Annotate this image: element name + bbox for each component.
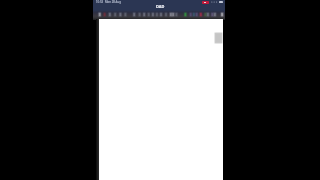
staticText: Mon 28 Aug — [105, 0, 121, 4]
staticText: 10:53 — [96, 0, 104, 4]
staticText: DAD — [156, 4, 165, 9]
button[interactable]: Side panel handle — [214, 32, 223, 44]
button[interactable]: Screen recording — [202, 1, 209, 4]
